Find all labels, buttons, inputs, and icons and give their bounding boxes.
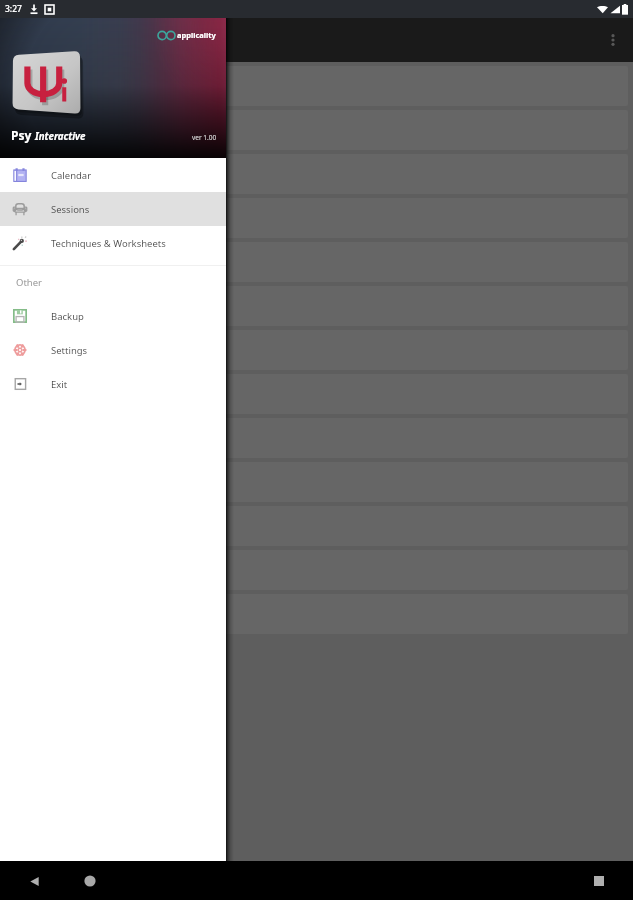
button[interactable]: Calendar [0,158,226,192]
button[interactable] [5,286,628,326]
staticText: Other [16,276,43,289]
button[interactable] [5,594,628,634]
button[interactable] [5,462,628,502]
button[interactable]: Backup [0,299,226,333]
button[interactable]: Home [74,865,106,897]
button[interactable] [5,550,628,590]
button[interactable]: Close navigation drawer [0,0,633,900]
staticText: Settings [51,344,88,357]
staticText: Exit [51,378,68,391]
button[interactable] [5,506,628,546]
button[interactable] [5,154,628,194]
staticText: Sessions [51,203,90,216]
button[interactable]: Back [18,865,50,897]
button[interactable]: Exit [0,367,226,401]
button[interactable] [5,110,628,150]
button[interactable] [5,242,628,282]
button[interactable] [5,374,628,414]
staticText: Backup [51,310,84,323]
staticText: ver 1.00 [192,133,217,142]
button[interactable] [5,66,628,106]
button[interactable] [5,418,628,458]
button[interactable] [5,330,628,370]
button[interactable]: Techniques & Worksheets [0,226,226,260]
button[interactable]: Sessions [0,192,226,226]
staticText: Techniques & Worksheets [51,237,166,250]
button[interactable]: Settings [0,333,226,367]
staticText: 3:27 [5,3,22,15]
staticText: applicality [177,30,216,40]
staticText: Psy [11,127,35,143]
button[interactable]: More options [593,20,633,60]
button[interactable] [5,198,628,238]
button[interactable]: Recents [583,865,615,897]
staticText: Calendar [51,169,92,182]
staticText: Interactive [35,130,86,143]
